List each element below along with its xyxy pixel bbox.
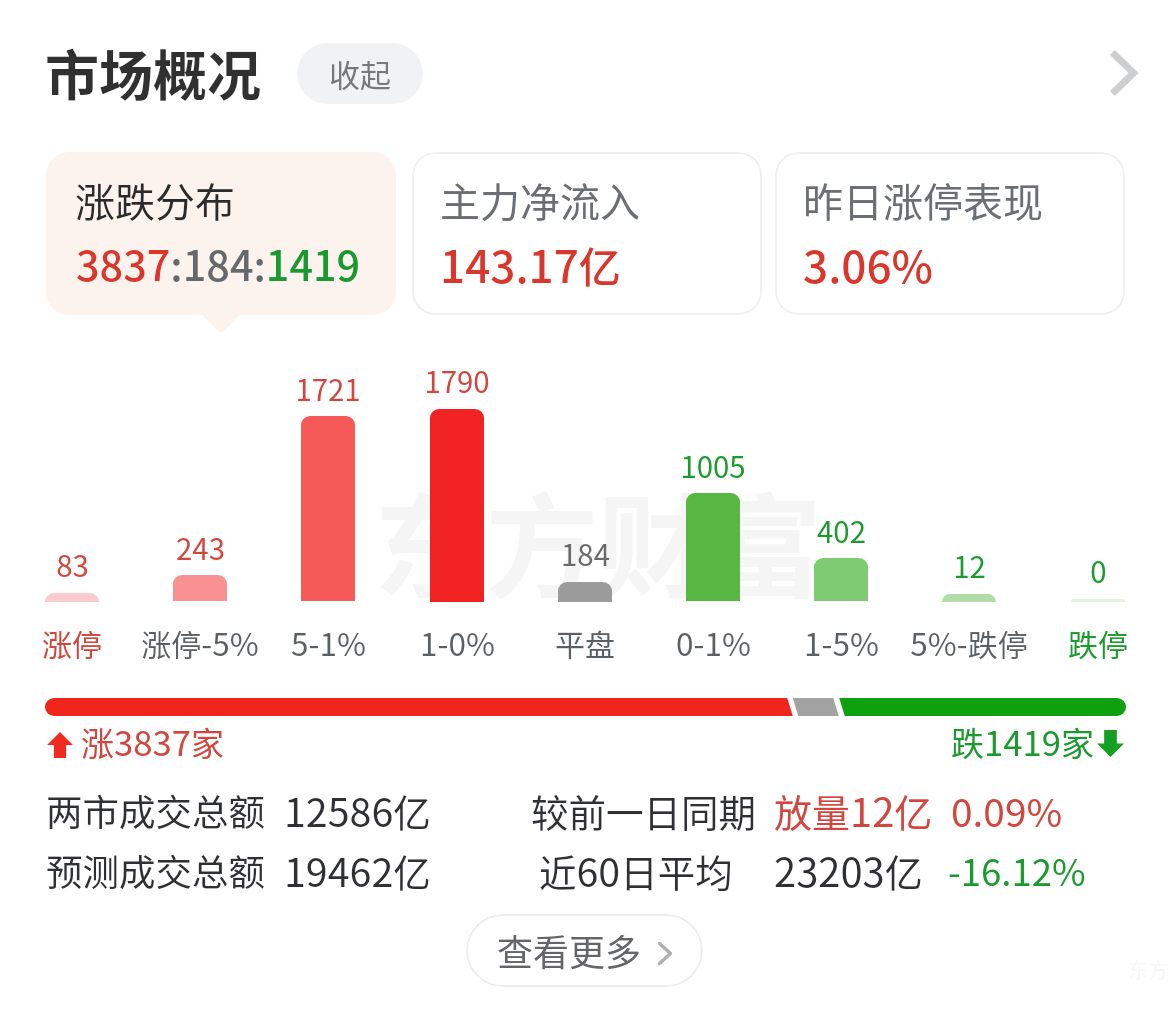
staticText: 收起 bbox=[329, 51, 391, 96]
staticText: 市场概况 bbox=[45, 33, 261, 111]
staticText: 涨跌分布 bbox=[75, 171, 235, 229]
staticText: 涨3837家 bbox=[81, 716, 224, 766]
staticText: 5%-跌停 bbox=[910, 619, 1028, 665]
staticText: 19462亿 bbox=[284, 841, 431, 898]
button[interactable]: Expand market overview bbox=[1090, 39, 1158, 107]
staticText: 23203亿 bbox=[774, 841, 923, 899]
staticText: 主力净流入 bbox=[440, 171, 640, 229]
staticText: 402 bbox=[817, 509, 866, 552]
staticText: 1-0% bbox=[420, 619, 495, 665]
button[interactable]: 收起 bbox=[297, 43, 423, 104]
staticText: 昨日涨停表现 bbox=[803, 171, 1043, 229]
staticText: -16.12% bbox=[948, 844, 1086, 897]
staticText: 12 bbox=[953, 544, 986, 587]
staticText: 3837:184:1419 bbox=[76, 233, 361, 293]
staticText: 东方财富 bbox=[374, 459, 822, 621]
staticText: 1005 bbox=[680, 444, 746, 487]
staticText: 0-1% bbox=[676, 619, 751, 665]
staticText: 跌停 bbox=[1068, 621, 1128, 664]
staticText: 预测成交总额 bbox=[46, 844, 265, 897]
staticText: 184 bbox=[561, 532, 610, 575]
staticText: 涨停-5% bbox=[141, 619, 259, 665]
button[interactable]: 查看更多 bbox=[466, 914, 703, 987]
staticText: 0.09% bbox=[951, 782, 1063, 838]
staticText: 近60日平均 bbox=[539, 841, 733, 898]
staticText: 0 bbox=[1090, 549, 1107, 592]
staticText: 查看更多 bbox=[497, 924, 642, 976]
staticText: 平盘 bbox=[555, 621, 615, 664]
staticText: 放量12亿 bbox=[774, 781, 933, 839]
staticText: 较前一日同期 bbox=[531, 783, 756, 837]
staticText: 跌1419家 bbox=[951, 716, 1094, 766]
staticText: 涨停 bbox=[42, 621, 102, 664]
staticText: 1790 bbox=[424, 359, 490, 402]
staticText: 1721 bbox=[295, 367, 361, 410]
staticText: 两市成交总额 bbox=[46, 784, 265, 837]
staticText: 12586亿 bbox=[284, 781, 431, 838]
staticText: 243 bbox=[176, 526, 225, 569]
staticText: 5-1% bbox=[291, 619, 366, 665]
staticText: 143.17亿 bbox=[440, 232, 621, 296]
button[interactable]: 昨日涨停表现 bbox=[775, 152, 1125, 315]
button[interactable]: 涨跌分布 bbox=[46, 152, 396, 315]
staticText: 83 bbox=[56, 543, 89, 586]
button[interactable]: 主力净流入 bbox=[412, 152, 762, 315]
staticText: 1-5% bbox=[804, 619, 879, 665]
staticText: 3.06% bbox=[803, 232, 933, 296]
